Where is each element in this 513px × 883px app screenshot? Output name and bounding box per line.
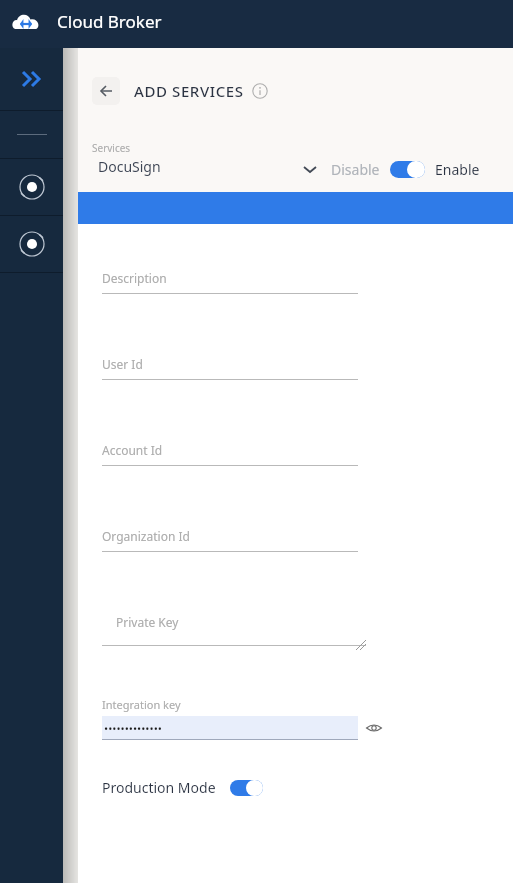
other: Cloud Broker logo — [10, 8, 42, 40]
staticText: User Id — [102, 356, 143, 372]
staticText: Disable — [331, 160, 380, 179]
button[interactable]: Account Id — [102, 442, 358, 466]
staticText: Enable — [435, 160, 480, 179]
button[interactable]: Production Mode — [102, 778, 263, 797]
button[interactable]: On — [390, 161, 425, 178]
staticText: DocuSign — [98, 157, 161, 176]
staticText: Production Mode — [102, 778, 216, 797]
staticText: ADD SERVICES — [134, 81, 244, 101]
staticText: Private Key — [116, 614, 179, 630]
button[interactable]: Services — [0, 158, 63, 215]
button[interactable]: Organization Id — [102, 528, 358, 552]
staticText: •••••••••••••• — [104, 721, 162, 736]
button[interactable]: •••••••••••••• — [102, 716, 358, 740]
button[interactable]: Services — [92, 134, 317, 192]
button[interactable]: Expand menu — [0, 48, 63, 110]
button[interactable]: Description — [102, 270, 358, 294]
button[interactable]: On — [230, 780, 263, 796]
button[interactable]: Private Key — [102, 614, 366, 655]
staticText: Description — [102, 270, 167, 286]
button[interactable]: Menu item — [0, 110, 63, 158]
staticText: Account Id — [102, 442, 163, 458]
button[interactable]: Show password — [365, 719, 383, 737]
staticText: Services — [92, 141, 131, 155]
staticText: Organization Id — [102, 528, 190, 544]
button[interactable]: Connections — [0, 215, 63, 272]
staticText: Cloud Broker — [57, 10, 162, 33]
button[interactable]: Back — [92, 77, 120, 105]
button[interactable]: User Id — [102, 356, 358, 380]
button[interactable]: Information — [252, 83, 268, 99]
button[interactable]: Disable — [331, 160, 480, 179]
staticText: Integration key — [102, 697, 181, 712]
